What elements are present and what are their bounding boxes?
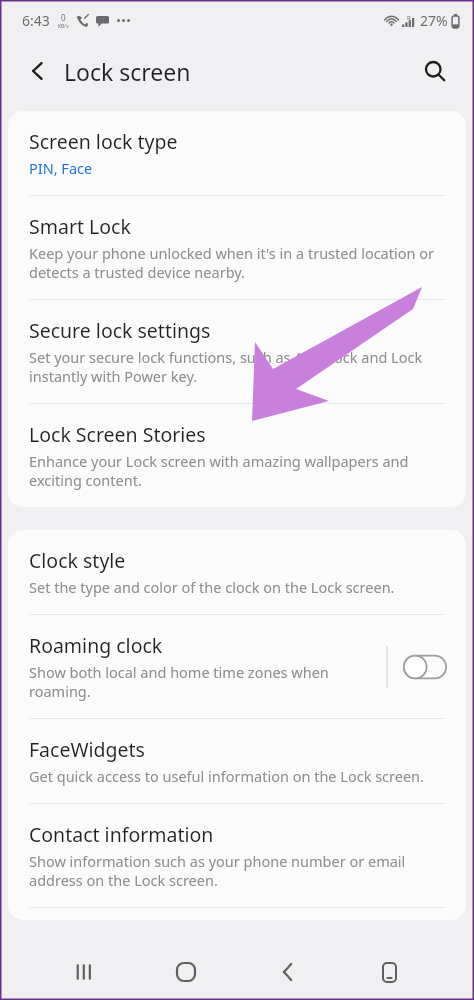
- staticText: R: [407, 14, 411, 22]
- staticText: Secure lock settings: [29, 317, 211, 344]
- button[interactable]: Keyboard: [362, 945, 416, 999]
- staticText: Lock Screen Stories: [29, 421, 206, 448]
- button[interactable]: Roaming clock: [8, 615, 466, 718]
- button[interactable]: Screen lock type: [8, 111, 466, 195]
- button[interactable]: Contact information: [8, 804, 466, 907]
- staticText: Keep your phone unlocked when it's in a …: [29, 243, 452, 282]
- staticText: Clock style: [29, 547, 126, 574]
- staticText: Screen lock type: [29, 128, 178, 155]
- staticText: Set your secure lock functions, such as …: [29, 347, 452, 386]
- staticText: Get quick access to useful information o…: [29, 766, 424, 786]
- button[interactable]: Home: [159, 945, 213, 999]
- button[interactable]: Back: [261, 945, 315, 999]
- button[interactable]: Lock Screen Stories: [8, 404, 466, 507]
- button[interactable]: Roaming clock toggle: [402, 652, 448, 682]
- staticText: FaceWidgets: [29, 736, 145, 763]
- staticText: Lock screen: [64, 56, 191, 87]
- staticText: 0: [61, 12, 66, 23]
- staticText: Smart Lock: [29, 213, 131, 240]
- button[interactable]: Recents: [58, 945, 112, 999]
- button[interactable]: Secure lock settings: [8, 300, 466, 403]
- staticText: 27%: [420, 11, 448, 30]
- staticText: Enhance your Lock screen with amazing wa…: [29, 451, 452, 490]
- button[interactable]: Smart Lock: [8, 196, 466, 299]
- button[interactable]: FaceWidgets: [8, 719, 466, 803]
- staticText: Set the type and color of the clock on t…: [29, 577, 395, 597]
- staticText: Roaming clock: [29, 632, 163, 659]
- staticText: 6:43: [22, 11, 50, 30]
- staticText: Show information such as your phone numb…: [29, 851, 452, 890]
- staticText: PIN, Face: [29, 158, 93, 178]
- staticText: Show both local and home time zones when…: [29, 662, 376, 701]
- staticText: Contact information: [29, 821, 214, 848]
- button[interactable]: Search: [412, 48, 458, 94]
- staticText: KB/s: [58, 23, 69, 30]
- button[interactable]: Clock style: [8, 530, 466, 614]
- button[interactable]: Back: [16, 49, 60, 93]
